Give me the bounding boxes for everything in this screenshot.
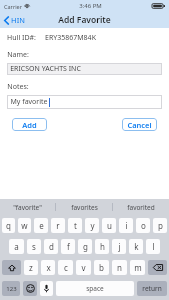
staticText: v [81, 262, 86, 273]
button[interactable]: e [34, 218, 48, 233]
staticText: k [134, 241, 139, 252]
button[interactable]: f [61, 239, 75, 254]
staticText: 3:46 PM [79, 2, 102, 10]
staticText: p [158, 220, 163, 231]
staticText: i [125, 220, 128, 231]
button[interactable]: Shift [2, 260, 21, 275]
staticText: space [86, 284, 104, 293]
staticText: q [6, 220, 11, 231]
staticText: j [118, 241, 121, 252]
staticText: g [83, 241, 88, 252]
button[interactable]: z [24, 260, 38, 275]
staticText: Carrier [4, 3, 22, 10]
staticText: "favorite" [13, 203, 42, 212]
staticText: y [90, 220, 95, 231]
button[interactable]: k [129, 239, 143, 254]
staticText: z [29, 262, 33, 273]
staticText: u [107, 220, 112, 231]
staticText: f [67, 241, 70, 252]
staticText: x [46, 262, 51, 273]
staticText: r [56, 220, 60, 231]
staticText: ERY35867M84K [45, 33, 96, 43]
staticText: h [100, 241, 105, 252]
staticText: return [142, 284, 162, 293]
staticText: n [117, 262, 122, 273]
button[interactable]: d [44, 239, 58, 254]
button[interactable]: x [41, 260, 55, 275]
staticText: Cancel [127, 120, 152, 130]
button[interactable]: o [136, 218, 150, 233]
button[interactable]: r [51, 218, 65, 233]
button[interactable]: favorites [56, 199, 112, 215]
button[interactable]: q [2, 218, 15, 233]
staticText: ERICSON YACHTS INC [10, 64, 81, 74]
button[interactable]: p [153, 218, 167, 233]
staticText: b [99, 262, 104, 273]
button[interactable]: Emoji [23, 281, 37, 296]
staticText: d [49, 241, 54, 252]
button[interactable]: Backspace [148, 260, 167, 275]
staticText: My favorite [10, 97, 48, 107]
staticText: a [14, 241, 19, 252]
button[interactable]: Cancel [122, 118, 157, 131]
staticText: Hull ID#: [7, 33, 36, 43]
staticText: Name: [7, 50, 29, 60]
staticText: e [39, 220, 44, 231]
staticText: Add [22, 120, 37, 130]
button[interactable]: 123 [2, 281, 20, 296]
staticText: HIN [11, 15, 25, 25]
button[interactable]: j [112, 239, 126, 254]
staticText: s [32, 241, 36, 252]
button[interactable]: v [76, 260, 91, 275]
button[interactable]: b [94, 260, 109, 275]
staticText: favorites [71, 203, 98, 212]
staticText: Add Favorite [58, 14, 111, 26]
button[interactable]: Add [12, 118, 47, 131]
button[interactable]: Dictate [40, 281, 53, 296]
button[interactable]: l [146, 239, 160, 254]
button[interactable]: m [130, 260, 145, 275]
staticText: l [152, 241, 155, 252]
button[interactable]: y [85, 218, 99, 233]
staticText: Notes: [7, 82, 29, 92]
staticText: t [74, 220, 77, 231]
button[interactable]: i [119, 218, 133, 233]
staticText: 123 [6, 285, 17, 293]
staticText: w [21, 220, 28, 231]
staticText: c [64, 262, 68, 273]
staticText: m [134, 262, 142, 273]
button[interactable]: w [18, 218, 31, 233]
button[interactable]: n [112, 260, 127, 275]
button[interactable]: return [137, 281, 167, 296]
button[interactable]: HIN [0, 13, 33, 27]
button[interactable]: My favorite [7, 95, 162, 109]
button[interactable]: c [58, 260, 73, 275]
button[interactable]: "favorite" [0, 199, 55, 215]
button[interactable]: s [27, 239, 41, 254]
button[interactable]: space [56, 281, 134, 296]
staticText: favorited [127, 203, 155, 212]
button[interactable]: a [9, 239, 24, 254]
button[interactable]: favorited [113, 199, 169, 215]
button[interactable]: u [102, 218, 116, 233]
button[interactable]: ERICSON YACHTS INC [7, 63, 162, 75]
staticText: o [141, 220, 146, 231]
button[interactable]: t [68, 218, 82, 233]
button[interactable]: h [95, 239, 109, 254]
button[interactable]: g [78, 239, 92, 254]
